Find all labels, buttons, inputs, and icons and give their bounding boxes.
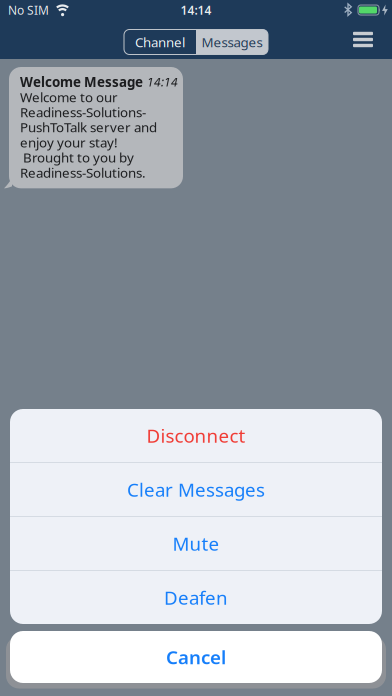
button[interactable]: Cancel (10, 631, 382, 683)
staticText: Readiness-Solutions. (20, 164, 146, 181)
staticText: 14:14 (147, 74, 178, 90)
staticText: Channel (135, 33, 185, 51)
staticText: PushToTalk server and (20, 118, 157, 136)
staticText: Welcome Message (20, 73, 143, 91)
staticText: Disconnect (146, 423, 245, 448)
button[interactable]: Menu (353, 32, 392, 47)
button[interactable]: Clear Messages (10, 463, 382, 516)
button[interactable]: Mute (10, 517, 382, 570)
staticText: No SIM (8, 2, 49, 18)
staticText: Messages (201, 33, 262, 51)
staticText: enjoy your stay! (20, 133, 118, 151)
button[interactable]: Messages (196, 29, 268, 54)
button[interactable]: Channel (124, 29, 196, 54)
button[interactable]: Disconnect (10, 409, 382, 462)
staticText: Brought to you by (20, 148, 134, 166)
staticText: Deafen (164, 585, 228, 610)
staticText: Cancel (166, 645, 226, 669)
staticText: Clear Messages (127, 477, 265, 502)
staticText: Welcome to our (20, 88, 118, 106)
button[interactable]: Deafen (10, 571, 382, 624)
staticText: Mute (172, 531, 219, 556)
staticText: 14:14 (180, 2, 211, 18)
staticText: Readiness-Solutions- (20, 103, 146, 121)
